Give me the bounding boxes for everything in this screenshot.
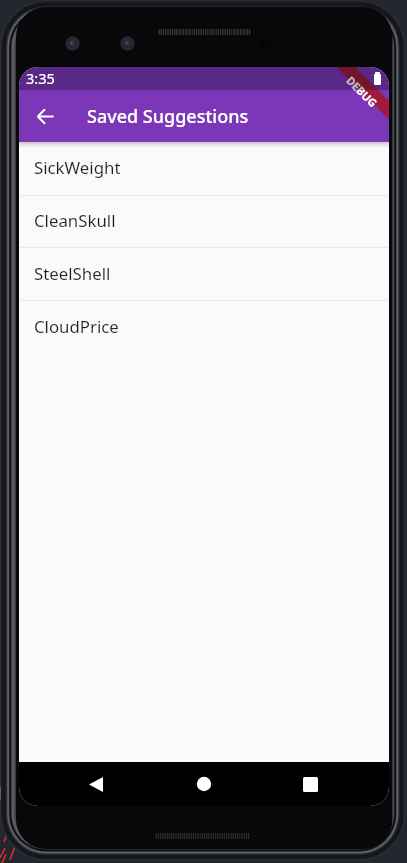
staticText: DEBUG [343, 73, 381, 110]
button[interactable]: Recent apps [290, 762, 330, 806]
staticText: CloudPrice [34, 315, 119, 338]
staticText: 3:35 [26, 68, 55, 88]
button[interactable]: Home [184, 762, 224, 806]
staticText: SickWeight [34, 156, 121, 179]
button[interactable]: CleanSkull [19, 196, 389, 247]
button[interactable]: SickWeight [19, 142, 389, 195]
button[interactable]: Back [76, 762, 116, 806]
staticText: SteelShell [34, 262, 111, 285]
staticText: CleanSkull [34, 209, 116, 232]
staticText: Saved Suggestions [87, 104, 249, 129]
button[interactable]: CloudPrice [19, 301, 389, 353]
button[interactable]: Navigate up [23, 94, 67, 138]
button[interactable]: SteelShell [19, 248, 389, 300]
